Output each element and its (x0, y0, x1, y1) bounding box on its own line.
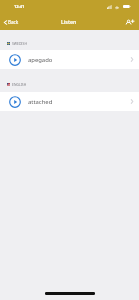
staticText: attached (28, 98, 53, 106)
button[interactable]: Back (0, 19, 23, 25)
staticText: ENGLISH (12, 82, 27, 87)
button[interactable]: apegado (0, 50, 139, 69)
staticText: apegado (28, 56, 53, 64)
staticText: 12:41 (14, 4, 25, 9)
button[interactable]: Add person (124, 16, 136, 28)
staticText: Listen (61, 18, 77, 25)
staticText: Back (8, 19, 19, 25)
staticText: SWEDISH (12, 41, 27, 46)
button[interactable]: attached (0, 92, 139, 111)
